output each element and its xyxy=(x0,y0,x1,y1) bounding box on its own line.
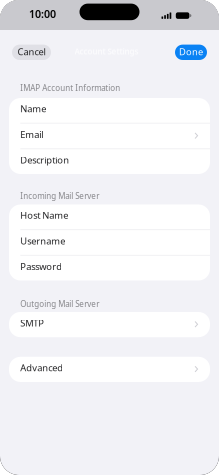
staticText: SMTP xyxy=(20,317,44,329)
staticText: Description xyxy=(20,154,69,166)
button[interactable]: Email xyxy=(9,124,210,148)
button[interactable]: Password xyxy=(9,256,210,280)
button[interactable]: SMTP xyxy=(9,312,210,337)
staticText: Incoming Mail Server xyxy=(20,191,99,201)
staticText: Advanced xyxy=(20,361,63,374)
button[interactable]: Host Name xyxy=(9,204,210,229)
staticText: Password xyxy=(20,260,62,273)
staticText: Username xyxy=(20,235,65,247)
button[interactable]: Done xyxy=(175,45,207,60)
staticText: Name xyxy=(20,102,46,115)
staticText: Cancel xyxy=(17,45,45,58)
button[interactable]: Name xyxy=(9,98,210,123)
staticText: IMAP Account Information xyxy=(20,83,120,93)
button[interactable]: Description xyxy=(9,149,210,174)
staticText: Host Name xyxy=(20,209,68,221)
staticText: Done xyxy=(179,45,203,58)
button[interactable]: Username xyxy=(9,230,210,255)
staticText: 10:00 xyxy=(29,7,56,21)
button[interactable]: Cancel xyxy=(12,45,51,60)
staticText: Email xyxy=(20,128,43,140)
button[interactable]: Advanced xyxy=(9,357,210,382)
staticText: Outgoing Mail Server xyxy=(20,299,99,309)
